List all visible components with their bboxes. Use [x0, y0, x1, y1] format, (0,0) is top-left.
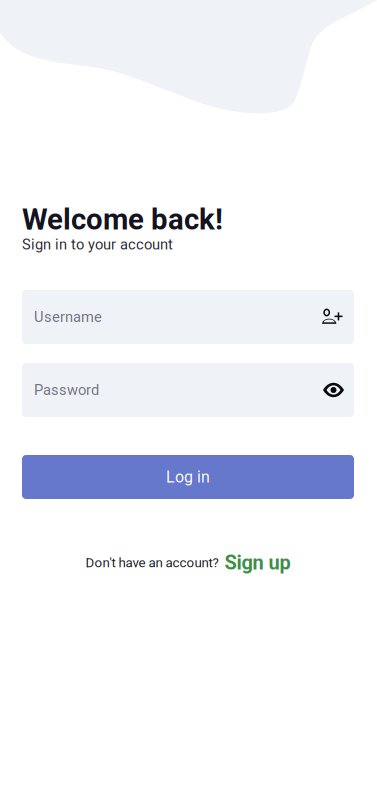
button[interactable]: Sign up	[224, 551, 290, 574]
button[interactable]: Username	[22, 290, 354, 344]
staticText: Don't have an account?	[85, 555, 218, 570]
button[interactable]: Password	[22, 363, 354, 417]
staticText: Sign up	[224, 551, 290, 574]
staticText: Log in	[166, 468, 210, 486]
staticText: Username	[34, 308, 102, 326]
button[interactable]: Log in	[22, 455, 354, 499]
staticText: Password	[34, 381, 99, 399]
staticText: Sign in to your account	[22, 236, 173, 253]
staticText: Welcome back!	[22, 202, 223, 237]
